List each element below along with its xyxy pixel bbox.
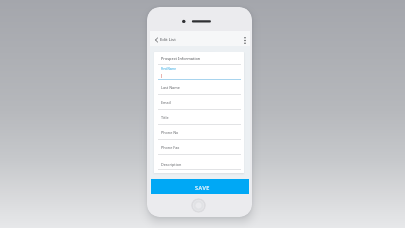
staticText: SAVE	[195, 184, 210, 192]
button[interactable]: More options	[239, 31, 250, 46]
staticText: Phone Fax	[161, 145, 180, 150]
button[interactable]: Phone Fax	[154, 140, 244, 155]
staticText: Prospect Information	[161, 56, 201, 61]
staticText: Title	[161, 115, 169, 120]
button[interactable]: Home	[191, 198, 206, 213]
staticText: Last Name	[161, 85, 180, 90]
button[interactable]: SAVE	[151, 179, 249, 194]
button[interactable]: Description	[154, 155, 244, 170]
button[interactable]: Edit List	[150, 31, 210, 46]
staticText: Email	[161, 100, 171, 105]
staticText: First Name	[161, 67, 176, 71]
button[interactable]: Title	[154, 110, 244, 125]
staticText: Description	[161, 162, 182, 167]
button[interactable]: Email	[154, 95, 244, 110]
button[interactable]: Last Name	[154, 80, 244, 95]
button[interactable]: First Name	[154, 65, 244, 79]
staticText: Edit List	[160, 37, 176, 43]
staticText: Phone No	[161, 130, 179, 135]
button[interactable]: Phone No	[154, 125, 244, 140]
